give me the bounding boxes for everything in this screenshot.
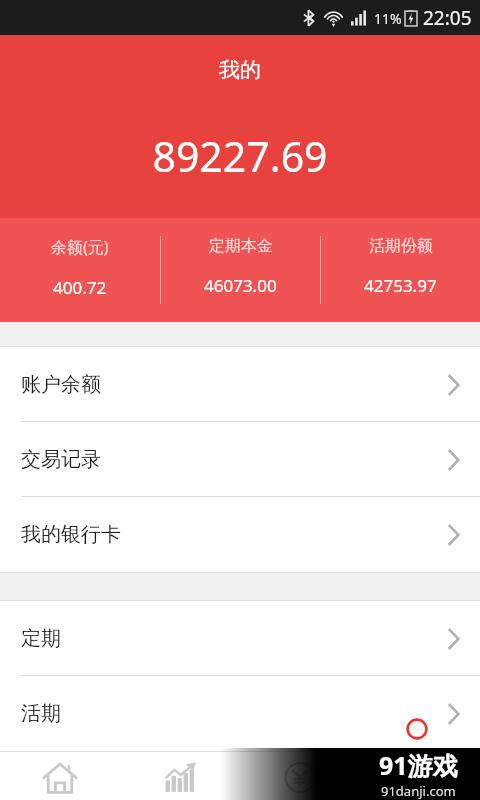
staticText: 活期份额	[369, 236, 433, 256]
button[interactable]: 活期	[0, 676, 480, 751]
button[interactable]: 首页	[0, 752, 120, 800]
staticText: 定期本金	[209, 236, 273, 256]
staticText: 400.72	[53, 276, 107, 299]
staticText: 11%	[374, 9, 402, 28]
staticText: 账户余额	[21, 372, 101, 397]
button[interactable]: 定期	[240, 752, 360, 800]
staticText: 定期	[21, 626, 61, 651]
button[interactable]: 交易记录	[0, 422, 480, 497]
staticText: 89227.69	[0, 128, 480, 184]
staticText: 91danji.com	[381, 782, 456, 800]
button[interactable]: 定期	[0, 601, 480, 676]
button[interactable]: 活期	[120, 752, 240, 800]
staticText: 91游戏	[379, 748, 458, 782]
staticText: 42753.97	[364, 274, 437, 297]
staticText: 活期	[21, 701, 61, 726]
staticText: 余额(元)	[51, 236, 109, 258]
staticText: 46073.00	[204, 274, 277, 297]
staticText: 交易记录	[21, 447, 101, 472]
button[interactable]: 我的银行卡	[0, 497, 480, 572]
staticText: 我的	[0, 57, 480, 83]
button[interactable]: 我的	[360, 752, 480, 800]
staticText: 我的银行卡	[21, 522, 121, 547]
button[interactable]: 账户余额	[0, 347, 480, 422]
staticText: 22:05	[423, 5, 472, 31]
